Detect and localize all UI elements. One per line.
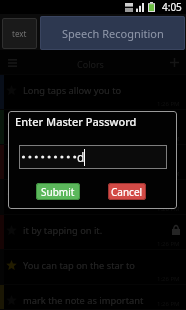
- staticText: 1:26 PM: [157, 135, 180, 143]
- button[interactable]: it by tapping on it.: [0, 215, 186, 250]
- button[interactable]: text: [2, 18, 37, 49]
- button[interactable]: Cancel: [108, 183, 146, 200]
- staticText: 1:26 PM: [157, 100, 180, 108]
- button[interactable]: Submit: [36, 183, 80, 200]
- staticText: them. You can also edit: [23, 154, 125, 167]
- button[interactable]: Add: [162, 50, 186, 75]
- staticText: Cancel: [111, 185, 143, 199]
- button[interactable]: select notes and delete: [0, 110, 186, 145]
- staticText: text: [12, 28, 27, 39]
- staticText: Long taps allow you to: [23, 84, 122, 97]
- button[interactable]: Long taps allow you to: [0, 75, 186, 110]
- button[interactable]: them. You can also edit: [0, 145, 186, 180]
- button[interactable]: d: [19, 145, 167, 169]
- button[interactable]: mark the note as important: [0, 285, 186, 310]
- staticText: 1:26 PM: [157, 170, 180, 178]
- staticText: You can tap on the star to: [23, 259, 135, 272]
- staticText: 1:26 PM: [157, 205, 180, 213]
- button[interactable]: Speech Recognition: [40, 16, 185, 50]
- staticText: a note by long tapping: [23, 189, 122, 202]
- staticText: Speech Recognition: [62, 26, 164, 41]
- staticText: Colors: [77, 58, 104, 70]
- staticText: Enter Master Password: [15, 114, 137, 129]
- staticText: mark the note as important: [23, 294, 144, 307]
- button[interactable]: a note by long tapping: [0, 180, 186, 215]
- staticText: 4:05: [162, 0, 182, 14]
- button[interactable]: Menu: [0, 50, 24, 75]
- staticText: select notes and delete: [23, 119, 124, 132]
- staticText: 1:26 PM: [157, 275, 180, 283]
- staticText: 1:26 PM: [157, 300, 180, 308]
- button[interactable]: You can tap on the star to: [0, 250, 186, 285]
- staticText: Submit: [41, 185, 75, 199]
- staticText: d: [77, 149, 85, 165]
- staticText: it by tapping on it.: [23, 224, 103, 237]
- staticText: 1:26 PM: [157, 240, 180, 248]
